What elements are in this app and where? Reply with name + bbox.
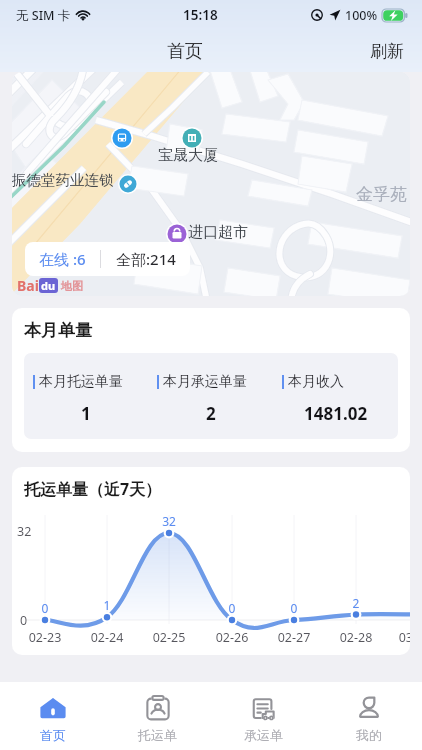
staticText: 1481.02	[304, 402, 368, 425]
staticText: 0	[218, 600, 246, 616]
staticText: 本月承运单量	[163, 373, 247, 391]
staticText: 托运单量（近7天）	[24, 478, 162, 500]
staticText: 0	[31, 600, 59, 616]
staticText: 0	[280, 600, 308, 616]
staticText: 02-27	[271, 629, 317, 646]
staticText: 无 SIM 卡	[16, 7, 71, 24]
staticText: 03-01	[392, 629, 410, 646]
staticText: 全部:214	[116, 249, 176, 269]
staticText: 我的	[356, 727, 382, 743]
button[interactable]: 承运单	[210, 682, 316, 750]
staticText: 本月收入	[288, 373, 344, 391]
staticText: 32	[17, 523, 32, 540]
staticText: 2	[206, 402, 216, 425]
staticText: 02-25	[146, 629, 192, 646]
staticText: 承运单	[244, 727, 283, 743]
staticText: 金孚苑	[356, 184, 407, 205]
staticText: 02-28	[333, 629, 379, 646]
staticText: 1	[81, 402, 91, 425]
staticText: 100%	[345, 7, 378, 24]
staticText: 02-23	[22, 629, 68, 646]
button[interactable]: 本月承运单量	[148, 353, 273, 439]
staticText: 刷新	[370, 41, 404, 62]
staticText: 02-26	[209, 629, 255, 646]
button[interactable]: 在线 :6	[25, 242, 190, 276]
button[interactable]: Map	[12, 72, 410, 296]
staticText: du	[41, 278, 56, 293]
staticText: 本月托运单量	[39, 373, 123, 391]
staticText: 2	[342, 595, 370, 611]
button[interactable]: 本月托运单量	[24, 353, 148, 439]
staticText: 0	[20, 612, 28, 629]
button[interactable]: 首页	[167, 40, 203, 63]
staticText: 在线 :6	[39, 249, 86, 269]
button[interactable]: 刷新	[370, 41, 422, 62]
button[interactable]: 本月收入	[273, 353, 398, 439]
staticText: 02-24	[84, 629, 130, 646]
staticText: 首页	[40, 727, 66, 743]
staticText: 托运单	[138, 727, 177, 743]
staticText: 本月单量	[24, 320, 92, 341]
staticText: 首页	[167, 40, 203, 63]
button[interactable]: 我的	[316, 682, 422, 750]
staticText: 1	[93, 597, 121, 613]
staticText: 进口超市	[188, 223, 248, 242]
staticText: 32	[155, 513, 183, 529]
staticText: 地图	[61, 279, 83, 293]
staticText: 振德堂药业连锁	[12, 171, 114, 189]
staticText: 15:18	[183, 6, 218, 24]
button[interactable]: 首页	[0, 682, 105, 750]
staticText: 宝晟大厦	[158, 146, 218, 165]
staticText: Bai	[17, 276, 39, 295]
button[interactable]: 托运单	[105, 682, 210, 750]
